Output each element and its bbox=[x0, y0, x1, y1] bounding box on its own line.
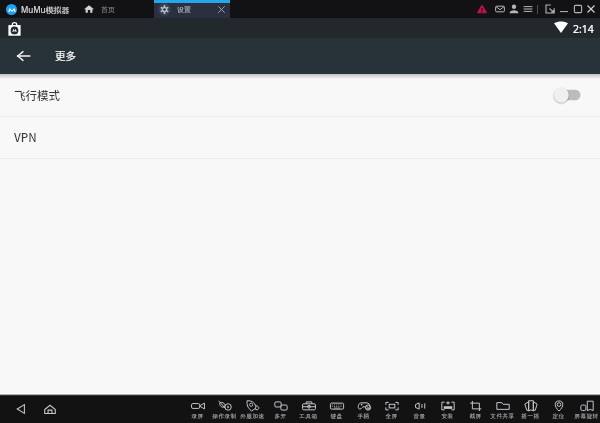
staticText: 首页 bbox=[101, 5, 115, 14]
button[interactable]: Restore bbox=[544, 3, 555, 14]
button[interactable]: 操作录制 bbox=[211, 393, 238, 423]
button[interactable]: 飞行模式 bbox=[0, 74, 600, 116]
button[interactable]: 手柄 bbox=[350, 393, 377, 423]
staticText: 2:14 bbox=[573, 22, 594, 36]
button[interactable]: Back bbox=[10, 43, 36, 69]
staticText: 工具箱 bbox=[299, 413, 318, 420]
staticText: 键盘 bbox=[330, 413, 343, 420]
button[interactable]: 安装 bbox=[434, 393, 461, 423]
button[interactable]: Alert bbox=[476, 3, 487, 14]
button[interactable]: Close tab bbox=[216, 4, 227, 15]
staticText: 音量 bbox=[413, 413, 426, 420]
staticText: 全屏 bbox=[385, 413, 398, 420]
staticText: 摇一摇 bbox=[521, 413, 540, 420]
staticText: 外服加速 bbox=[240, 413, 265, 420]
button[interactable]: Maximize bbox=[572, 3, 583, 14]
button[interactable]: 录屏 bbox=[184, 393, 211, 423]
button[interactable]: Minimize bbox=[558, 3, 569, 14]
button[interactable]: 摇一摇 bbox=[517, 393, 544, 423]
button[interactable]: MuMu模拟器 bbox=[6, 0, 70, 18]
button[interactable]: Mail bbox=[494, 3, 505, 14]
button[interactable]: 设置 bbox=[154, 0, 230, 18]
button[interactable]: Home bbox=[41, 400, 59, 418]
staticText: 多开 bbox=[274, 413, 287, 420]
staticText: 文件共享 bbox=[490, 413, 515, 420]
staticText: 录屏 bbox=[191, 413, 204, 420]
staticText: 更多 bbox=[55, 48, 76, 63]
staticText: 屏幕旋转 bbox=[574, 413, 599, 420]
staticText: 操作录制 bbox=[212, 413, 237, 420]
button[interactable]: Account bbox=[508, 3, 519, 14]
staticText: 安装 bbox=[441, 413, 454, 420]
button[interactable]: 键盘 bbox=[323, 393, 350, 423]
staticText: VPN bbox=[14, 129, 37, 146]
button[interactable]: 截屏 bbox=[462, 393, 489, 423]
button[interactable]: 音量 bbox=[406, 393, 433, 423]
staticText: 手柄 bbox=[357, 413, 370, 420]
button[interactable]: 工具箱 bbox=[295, 393, 322, 423]
button[interactable]: 屏幕旋转 bbox=[573, 393, 600, 423]
staticText: 截屏 bbox=[469, 413, 482, 420]
button[interactable]: 外服加速 bbox=[239, 393, 266, 423]
button[interactable]: 定位 bbox=[545, 393, 572, 423]
button[interactable]: 多开 bbox=[267, 393, 294, 423]
staticText: 飞行模式 bbox=[14, 87, 60, 104]
button[interactable]: VPN bbox=[0, 117, 600, 158]
button[interactable]: 首页 bbox=[84, 2, 115, 16]
staticText: 设置 bbox=[177, 5, 191, 14]
button[interactable]: Close bbox=[585, 3, 596, 14]
button[interactable]: Airplane mode switch bbox=[554, 85, 584, 105]
staticText: 定位 bbox=[552, 413, 565, 420]
button[interactable]: Back bbox=[12, 400, 30, 418]
button[interactable]: 全屏 bbox=[378, 393, 405, 423]
button[interactable]: 文件共享 bbox=[489, 393, 516, 423]
staticText: MuMu模拟器 bbox=[21, 4, 70, 15]
button[interactable]: Menu bbox=[522, 3, 533, 14]
